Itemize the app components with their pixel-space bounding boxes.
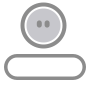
button[interactable]: Continue [4, 54, 86, 80]
button[interactable]: Profile [20, 2, 66, 48]
